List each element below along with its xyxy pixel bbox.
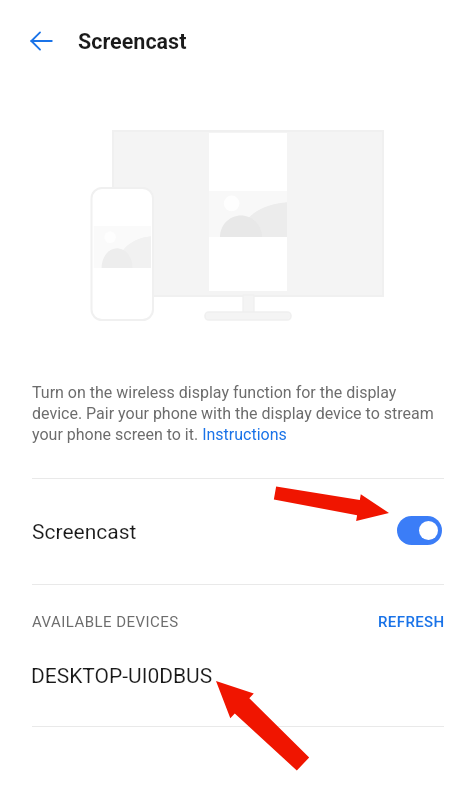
staticText: AVAILABLE DEVICES: [32, 613, 179, 631]
button[interactable]: REFRESH: [368, 603, 455, 641]
staticText: Turn on the wireless display function fo…: [32, 383, 434, 444]
button[interactable]: [0, 479, 475, 584]
button[interactable]: Screencast toggle: [397, 516, 442, 545]
staticText: Screencast: [78, 29, 187, 54]
staticText: DESKTOP-UI0DBUS: [31, 664, 213, 689]
staticText: Screencast: [32, 520, 137, 545]
staticText: REFRESH: [378, 613, 445, 631]
button[interactable]: [0, 645, 475, 726]
button[interactable]: Back: [23, 23, 59, 59]
